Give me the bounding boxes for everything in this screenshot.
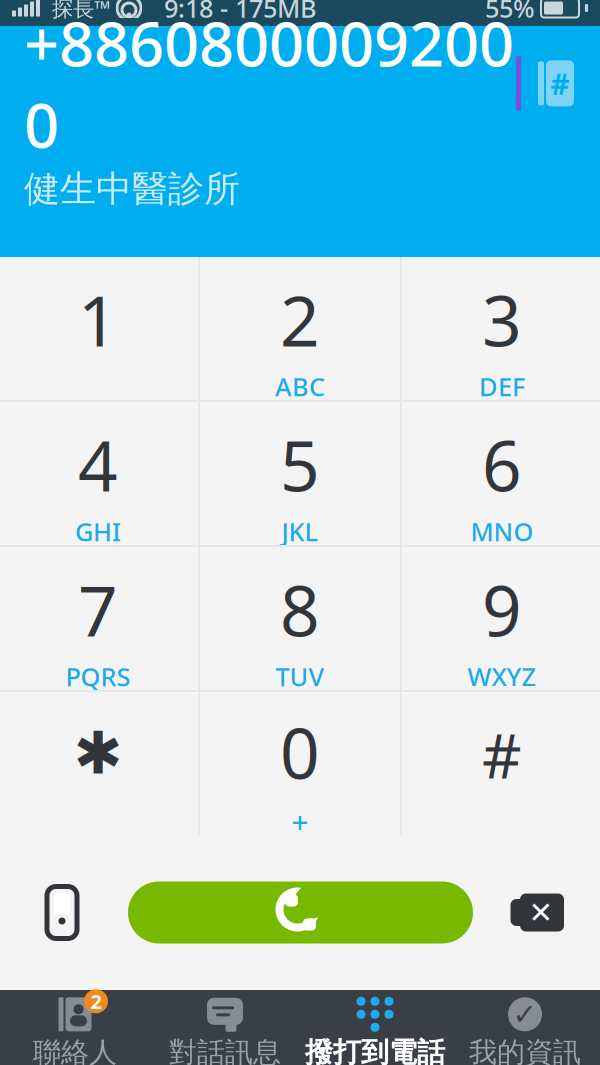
staticText: 3 [482, 274, 522, 366]
staticText: ABC [275, 370, 325, 403]
button[interactable]: 6 [402, 402, 600, 545]
staticText: 2 [90, 988, 101, 1015]
button[interactable]: Contacts [534, 59, 578, 107]
button[interactable]: # [402, 692, 600, 835]
button[interactable]: 9 [402, 547, 600, 690]
staticText: DEF [479, 370, 525, 403]
button[interactable]: 對話訊息 [150, 990, 300, 1065]
staticText [94, 370, 101, 403]
staticText: 1 [78, 274, 118, 366]
button[interactable]: 4 [0, 402, 198, 545]
button[interactable]: 撥打到電話 [300, 990, 450, 1065]
staticText: 6 [482, 419, 522, 511]
staticText: 7 [78, 564, 118, 656]
staticText: GHI [75, 515, 121, 548]
button[interactable]: 5 [200, 402, 400, 545]
staticText: # [482, 714, 522, 795]
staticText: ✱ [73, 720, 122, 787]
staticText: 55% [485, 0, 535, 25]
staticText: +88608000092000 [24, 2, 514, 165]
button[interactable]: ✓ [450, 990, 600, 1065]
staticText: 我的資訊 [469, 1035, 581, 1065]
staticText: JKL [281, 515, 318, 548]
staticText: 聯絡人 [33, 1035, 117, 1065]
staticText: + [291, 802, 308, 841]
staticText: TUV [275, 660, 324, 693]
staticText: 2 [280, 274, 320, 366]
button[interactable]: Call options [34, 872, 90, 952]
staticText: ✕ [528, 896, 553, 929]
button[interactable]: 0 [200, 692, 400, 835]
button[interactable]: Call [128, 881, 473, 943]
staticText: 0 [280, 706, 320, 798]
staticText: MNO [470, 515, 533, 548]
staticText: 健生中醫診所 [24, 167, 240, 211]
button[interactable]: 2 [0, 990, 150, 1065]
button[interactable]: ✱ [0, 692, 198, 835]
staticText: 探長™ [52, 0, 110, 22]
button[interactable]: Delete [501, 872, 571, 952]
button[interactable]: 7 [0, 547, 198, 690]
button[interactable]: 3 [402, 257, 600, 400]
staticText: 5 [280, 419, 320, 511]
button[interactable]: 8 [200, 547, 400, 690]
staticText: 4 [78, 419, 118, 511]
staticText: WXYZ [467, 660, 536, 693]
staticText: 9 [482, 564, 522, 656]
staticText: ✓ [512, 998, 537, 1031]
staticText: 對話訊息 [169, 1035, 281, 1065]
button[interactable]: 1 [0, 257, 198, 400]
staticText: PQRS [65, 660, 130, 693]
button[interactable]: 2 [200, 257, 400, 400]
staticText: # [550, 64, 569, 103]
staticText: 9:18 - 175MB [164, 0, 317, 25]
staticText: 8 [280, 564, 320, 656]
staticText: 撥打到電話 [305, 1035, 445, 1065]
